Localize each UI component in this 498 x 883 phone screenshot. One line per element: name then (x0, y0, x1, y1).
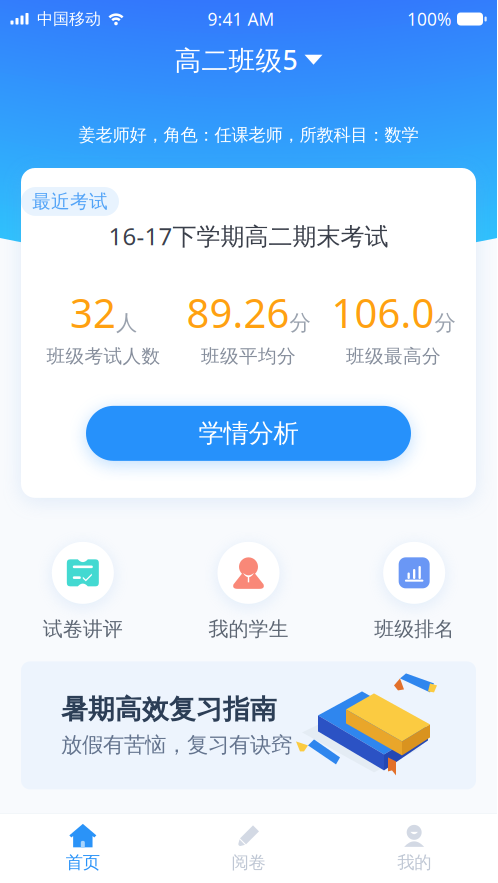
staticText: 分 (434, 310, 455, 336)
staticText: 100% (407, 7, 451, 30)
staticText: 学情分析 (198, 418, 298, 449)
staticText: 暑期高效复习指南 (61, 693, 277, 726)
button[interactable]: 阅卷 (166, 813, 331, 883)
staticText: 班级平均分 (201, 345, 296, 368)
staticText: 我的学生 (208, 617, 288, 641)
staticText: 中国移动 (37, 9, 101, 29)
staticText: 9:41 AM (207, 7, 274, 30)
staticText: 最近考试 (32, 190, 108, 213)
staticText: 高二班级5 (174, 42, 297, 77)
staticText: 阅卷 (231, 852, 265, 873)
staticText: 班级排名 (374, 617, 454, 641)
button[interactable]: 试卷讲评 (0, 539, 166, 641)
staticText: 89.26 (186, 286, 289, 339)
staticText: 姜老师好，角色：任课老师，所教科目：数学 (78, 124, 418, 146)
staticText: 试卷讲评 (43, 617, 123, 641)
staticText: 班级最高分 (346, 345, 441, 368)
staticText: 放假有苦恼，复习有诀窍 (61, 732, 292, 758)
staticText: 32 (70, 286, 116, 339)
button[interactable]: 首页 (0, 813, 166, 883)
staticText: 106.0 (331, 286, 434, 339)
staticText: 我的 (397, 852, 431, 873)
staticText: 首页 (66, 852, 100, 873)
staticText: 人 (116, 310, 137, 336)
button[interactable]: 高二班级5 (164, 38, 332, 81)
staticText: 16-17下学期高二期末考试 (108, 220, 388, 252)
button[interactable]: 班级排名 (331, 539, 497, 641)
button[interactable]: 我的学生 (166, 539, 331, 641)
button[interactable]: 学情分析 (86, 406, 411, 461)
staticText: 班级考试人数 (46, 345, 160, 368)
staticText: 分 (289, 310, 310, 336)
button[interactable]: 我的 (331, 813, 497, 883)
button[interactable]: 暑期高效复习指南 (21, 661, 476, 789)
